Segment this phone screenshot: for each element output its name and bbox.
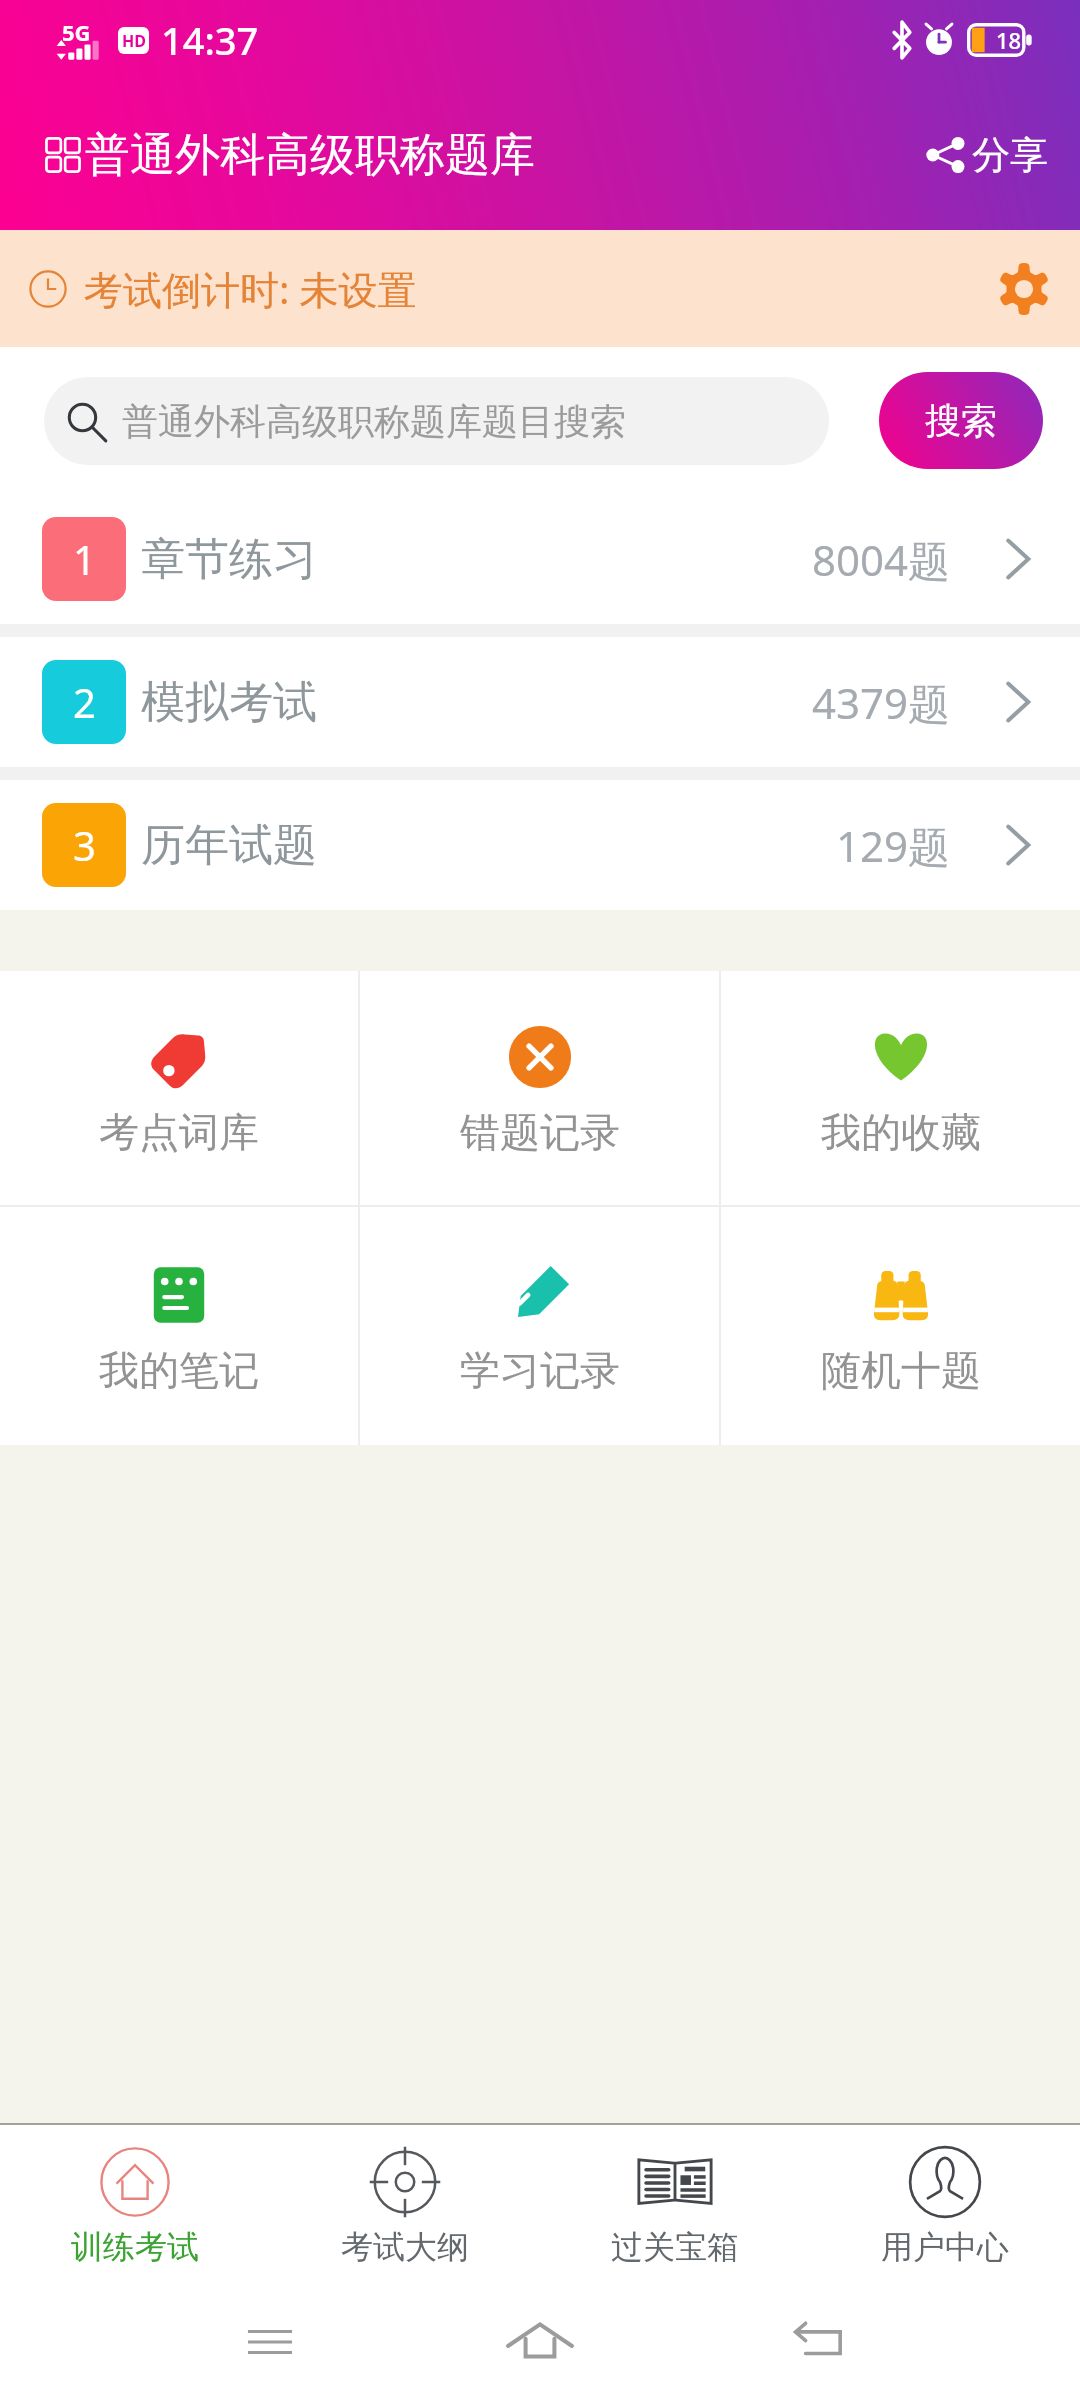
staticText: 分享 xyxy=(972,131,1048,179)
button[interactable]: 分享 xyxy=(920,123,1054,187)
staticText: 1 xyxy=(73,532,96,586)
button[interactable]: 3 xyxy=(0,780,1080,910)
button[interactable]: 过关宝箱 xyxy=(540,2123,810,2283)
button[interactable]: 学习记录 xyxy=(360,1207,719,1445)
button[interactable]: Home xyxy=(490,2292,590,2392)
staticText: 8004题 xyxy=(812,531,951,588)
staticText: 129题 xyxy=(836,817,951,874)
staticText: 用户中心 xyxy=(881,2227,1009,2267)
button[interactable]: 1 xyxy=(0,494,1080,624)
staticText: 章节练习 xyxy=(141,532,317,587)
staticText: HD xyxy=(122,30,146,52)
button[interactable]: 用户中心 xyxy=(810,2123,1080,2283)
button[interactable]: 搜索 xyxy=(879,372,1043,469)
staticText: 我的收藏 xyxy=(821,1107,981,1157)
staticText: 3 xyxy=(73,818,96,872)
button[interactable]: 我的笔记 xyxy=(0,1207,358,1445)
staticText: 训练考试 xyxy=(71,2227,199,2267)
staticText: 历年试题 xyxy=(141,818,317,873)
staticText: 普通外科高级职称题库题目搜索 xyxy=(122,399,626,444)
staticText: 过关宝箱 xyxy=(611,2227,739,2267)
staticText: 5G xyxy=(62,17,91,47)
staticText: 普通外科高级职称题库 xyxy=(85,127,535,184)
button[interactable]: 设置 xyxy=(994,259,1054,319)
button[interactable]: Recents xyxy=(225,2297,315,2387)
button[interactable]: Back xyxy=(775,2297,865,2387)
button[interactable]: 我的收藏 xyxy=(721,971,1080,1205)
button[interactable]: 考点词库 xyxy=(0,971,358,1205)
button[interactable]: 错题记录 xyxy=(360,971,719,1205)
button[interactable]: 训练考试 xyxy=(0,2123,270,2283)
button[interactable]: 随机十题 xyxy=(721,1207,1080,1445)
staticText: 学习记录 xyxy=(460,1345,620,1395)
staticText: 4379题 xyxy=(812,674,951,731)
staticText: 搜索 xyxy=(925,398,997,443)
staticText: 2 xyxy=(73,675,96,729)
button[interactable]: 普通外科高级职称题库题目搜索 xyxy=(44,377,829,465)
button[interactable]: 考试大纲 xyxy=(270,2123,540,2283)
staticText: 随机十题 xyxy=(821,1345,981,1395)
staticText: 14:37 xyxy=(161,14,259,66)
staticText: 模拟考试 xyxy=(141,675,317,730)
button[interactable]: 2 xyxy=(0,637,1080,767)
staticText: 考点词库 xyxy=(99,1107,259,1157)
button[interactable]: 考试倒计时: 未设置 xyxy=(0,230,1080,347)
staticText: 18 xyxy=(996,25,1022,55)
staticText: 我的笔记 xyxy=(99,1345,259,1395)
staticText: 考试倒计时: 未设置 xyxy=(84,262,417,315)
staticText: 错题记录 xyxy=(460,1107,620,1157)
staticText: 考试大纲 xyxy=(341,2227,469,2267)
